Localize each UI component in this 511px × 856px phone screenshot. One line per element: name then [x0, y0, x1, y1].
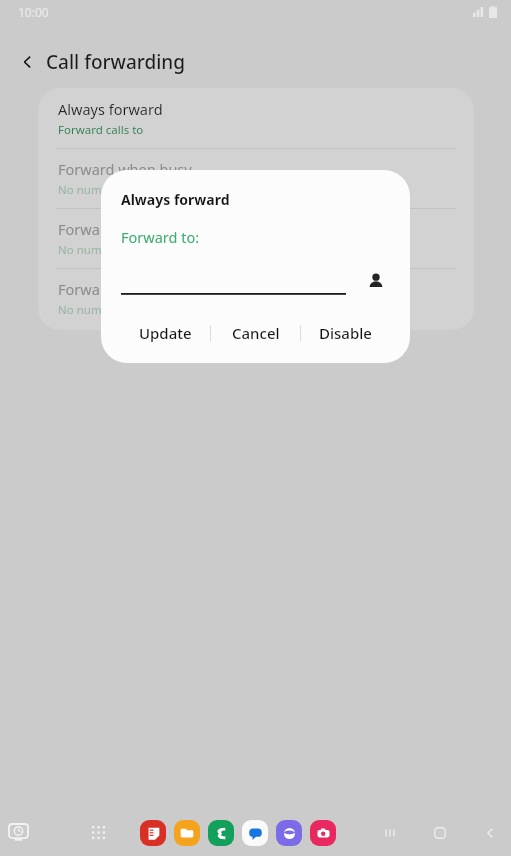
- staticText: Forward calls to: [58, 122, 144, 138]
- staticText: No number: [58, 242, 120, 258]
- button[interactable]: My Files: [174, 820, 200, 846]
- button[interactable]: Messages: [242, 820, 268, 846]
- button[interactable]: Taskbar: [2, 817, 34, 849]
- button[interactable]: Cancel: [211, 314, 300, 352]
- button[interactable]: Forward when busy: [38, 149, 474, 208]
- button[interactable]: Disable: [301, 314, 390, 352]
- button[interactable]: Forward when unreachable: [38, 269, 474, 328]
- staticText: Update: [139, 323, 192, 343]
- staticText: Always forward: [58, 99, 163, 119]
- staticText: Forward when unanswered: [58, 219, 244, 239]
- button[interactable]: Samsung Notes: [140, 820, 166, 846]
- button[interactable]: Pick contact: [362, 267, 390, 295]
- button[interactable]: Internet: [276, 820, 302, 846]
- button[interactable]: Back: [475, 818, 505, 848]
- staticText: Forward to:: [121, 227, 200, 247]
- button[interactable]: [121, 265, 346, 295]
- button[interactable]: Recents: [375, 818, 405, 848]
- button[interactable]: Home: [425, 818, 455, 848]
- staticText: Cancel: [232, 323, 280, 343]
- button[interactable]: Forward when unanswered: [38, 209, 474, 268]
- staticText: Disable: [319, 323, 372, 343]
- button[interactable]: Camera: [310, 820, 336, 846]
- staticText: Forward when busy: [58, 159, 192, 179]
- staticText: No number: [58, 302, 120, 318]
- button[interactable]: Update: [121, 314, 210, 352]
- button[interactable]: Phone: [208, 820, 234, 846]
- staticText: 10:00: [18, 4, 49, 20]
- staticText: Forward when unreachable: [58, 279, 245, 299]
- button[interactable]: Back: [10, 44, 46, 80]
- staticText: Call forwarding: [46, 49, 186, 75]
- button[interactable]: Apps: [84, 818, 114, 848]
- staticText: Always forward: [121, 190, 230, 209]
- button[interactable]: Always forward: [38, 88, 474, 148]
- staticText: No number: [58, 182, 120, 198]
